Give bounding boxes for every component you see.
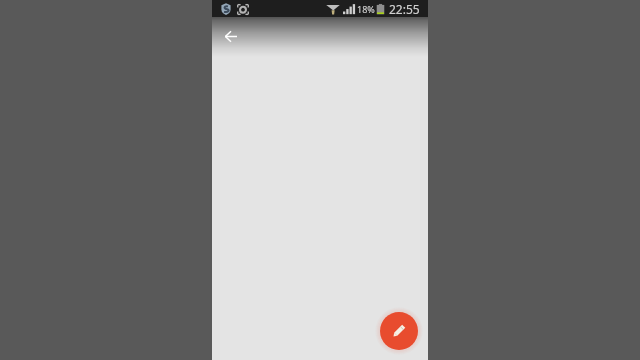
button[interactable]: Compose — [380, 312, 418, 350]
staticText: 22:55 — [389, 1, 420, 17]
staticText: 18% — [357, 3, 375, 15]
button[interactable]: Back — [217, 22, 245, 50]
